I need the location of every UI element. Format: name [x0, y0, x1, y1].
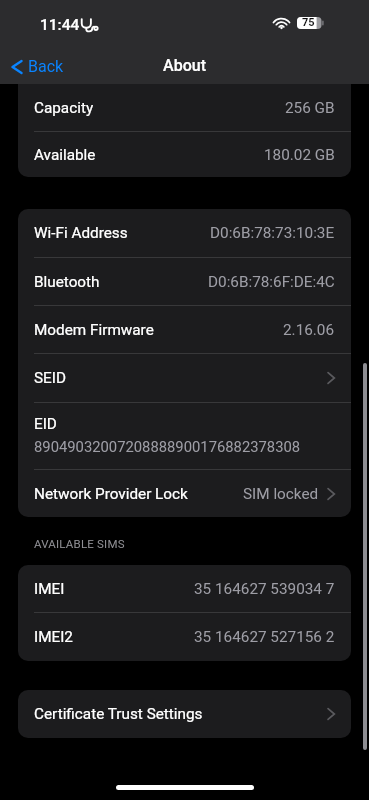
button[interactable]: EID [18, 403, 351, 470]
staticText: 35 164627 527156 2 [194, 628, 335, 646]
staticText: SIM locked [243, 485, 319, 503]
staticText: D0:6B:78:6F:DE:4C [208, 273, 335, 291]
button[interactable]: IMEI [18, 565, 351, 613]
button[interactable]: Capacity [18, 84, 351, 132]
button[interactable]: AVAILABLE SIMS [34, 537, 125, 550]
staticText: 180.02 GB [264, 146, 335, 164]
staticText: Modem Firmware [34, 321, 154, 339]
staticText: AVAILABLE SIMS [34, 537, 125, 550]
staticText: 89049032007208888900176882378308 [34, 438, 301, 455]
staticText: Available [34, 146, 96, 164]
button[interactable]: Available [18, 132, 351, 177]
button[interactable]: Certificate Trust Settings [18, 690, 351, 738]
staticText: 75 [302, 16, 315, 29]
button[interactable]: Back [8, 55, 67, 78]
button[interactable]: Bluetooth [18, 258, 351, 306]
staticText: 256 GB [285, 99, 335, 117]
staticText: IMEI [34, 580, 65, 598]
staticText: Wi-Fi Address [34, 224, 128, 242]
staticText: Capacity [34, 99, 94, 117]
staticText: Certificate Trust Settings [34, 705, 203, 723]
staticText: 2.16.06 [283, 321, 335, 339]
button[interactable]: SEID [18, 354, 351, 403]
staticText: 11:44 [40, 16, 80, 34]
staticText: About [163, 56, 206, 75]
button[interactable]: IMEI2 [18, 613, 351, 661]
staticText: D0:6B:78:73:10:3E [210, 224, 335, 242]
button[interactable]: Modem Firmware [18, 306, 351, 354]
staticText: SEID [34, 369, 66, 387]
staticText: Network Provider Lock [34, 485, 188, 503]
staticText: Back [28, 57, 64, 76]
staticText: Bluetooth [34, 273, 100, 291]
button[interactable]: Network Provider Lock [18, 470, 351, 517]
staticText: IMEI2 [34, 628, 73, 646]
staticText: EID [34, 415, 57, 433]
staticText: 35 164627 539034 7 [194, 580, 335, 598]
button[interactable]: Wi-Fi Address [18, 209, 351, 258]
